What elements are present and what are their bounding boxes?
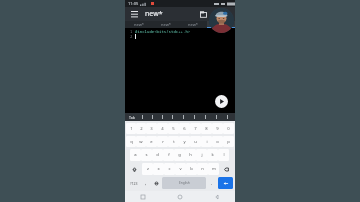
button[interactable]: 4 xyxy=(157,123,168,134)
button[interactable]: Run xyxy=(215,95,228,108)
button[interactable]: Symbol xyxy=(137,113,147,121)
staticText: 6 xyxy=(183,126,186,132)
staticText: a xyxy=(134,152,137,158)
staticText: 2 xyxy=(140,126,143,132)
staticText: o xyxy=(216,139,219,145)
staticText: 4 xyxy=(161,126,164,132)
button[interactable]: b xyxy=(186,163,197,175)
button[interactable]: x xyxy=(153,163,164,175)
button[interactable]: q xyxy=(126,136,136,147)
staticText: 9 xyxy=(216,126,219,132)
button[interactable]: 0 xyxy=(223,123,234,134)
staticText: x xyxy=(157,166,160,172)
button[interactable]: Back xyxy=(198,191,235,202)
button[interactable]: n xyxy=(197,163,208,175)
button[interactable]: new* xyxy=(125,21,152,28)
button[interactable]: Symbol xyxy=(222,113,233,121)
staticText: n xyxy=(201,166,204,172)
staticText: new* xyxy=(161,22,171,27)
button[interactable]: Open file xyxy=(198,9,209,20)
staticText: f xyxy=(168,152,170,158)
button[interactable]: w xyxy=(136,136,146,147)
button[interactable]: 9 xyxy=(212,123,223,134)
button[interactable]: h xyxy=(185,149,196,161)
staticText: q xyxy=(130,139,133,145)
button[interactable]: s xyxy=(141,149,152,161)
button[interactable]: y xyxy=(179,136,190,147)
staticText: new* xyxy=(216,22,226,27)
button[interactable]: v xyxy=(175,163,186,175)
button[interactable]: t xyxy=(168,136,179,147)
staticText: s xyxy=(145,152,148,158)
staticText: ?123 xyxy=(130,181,138,186)
staticText: g xyxy=(178,152,181,158)
button[interactable]: new* xyxy=(152,21,179,28)
staticText: 2 xyxy=(130,34,133,39)
staticText: 5 xyxy=(172,126,175,132)
staticText: p xyxy=(227,139,230,145)
button[interactable]: Symbol xyxy=(211,113,222,121)
staticText: k xyxy=(211,152,214,158)
button[interactable]: Tab xyxy=(127,113,137,121)
button[interactable]: d xyxy=(152,149,163,161)
staticText: m xyxy=(212,166,216,172)
button[interactable]: Backspace xyxy=(219,163,234,175)
button[interactable]: g xyxy=(174,149,185,161)
staticText: English xyxy=(179,181,190,185)
button[interactable]: Symbol xyxy=(189,113,200,121)
button[interactable]: . xyxy=(207,176,217,190)
button[interactable]: Symbol xyxy=(157,113,167,121)
button[interactable]: , xyxy=(141,176,151,190)
button[interactable]: k xyxy=(207,149,218,161)
button[interactable]: Shift xyxy=(126,163,142,175)
staticText: 3 xyxy=(150,126,153,132)
button[interactable]: j xyxy=(196,149,207,161)
button[interactable]: new* xyxy=(207,21,235,28)
button[interactable]: 2 xyxy=(136,123,146,134)
staticText: u xyxy=(194,139,197,145)
staticText: 8 xyxy=(205,126,208,132)
button[interactable]: z xyxy=(142,163,153,175)
button[interactable]: Symbol xyxy=(167,113,178,121)
staticText: w xyxy=(139,139,143,145)
staticText: t xyxy=(173,139,175,145)
button[interactable]: o xyxy=(212,136,223,147)
staticText: e xyxy=(150,139,153,145)
staticText: 11:05 xyxy=(128,1,139,6)
button[interactable]: Enter xyxy=(218,177,233,189)
staticText: c xyxy=(168,166,171,172)
button[interactable]: new* xyxy=(179,21,207,28)
button[interactable]: 5 xyxy=(168,123,179,134)
button[interactable]: English xyxy=(162,177,206,189)
staticText: y xyxy=(183,139,186,145)
button[interactable]: u xyxy=(190,136,201,147)
staticText: , xyxy=(145,180,147,187)
staticText: v xyxy=(179,166,182,172)
button[interactable]: e xyxy=(146,136,157,147)
button[interactable]: c xyxy=(164,163,175,175)
button[interactable]: i xyxy=(201,136,212,147)
staticText: i xyxy=(206,139,208,145)
button[interactable]: Symbol xyxy=(178,113,189,121)
button[interactable]: 7 xyxy=(190,123,201,134)
staticText: . xyxy=(211,180,213,187)
button[interactable]: 6 xyxy=(179,123,190,134)
button[interactable]: r xyxy=(157,136,168,147)
button[interactable]: 8 xyxy=(201,123,212,134)
button[interactable]: 1 xyxy=(126,123,136,134)
button[interactable]: Recents xyxy=(125,191,161,202)
button[interactable]: Menu xyxy=(129,9,139,19)
button[interactable]: Symbol xyxy=(200,113,211,121)
staticText: 0 xyxy=(227,126,230,132)
button[interactable]: Change language xyxy=(151,177,161,189)
button[interactable]: l xyxy=(218,149,229,161)
button[interactable]: ?123 xyxy=(127,177,140,189)
button[interactable]: a xyxy=(130,149,141,161)
button[interactable]: Home xyxy=(161,191,198,202)
button[interactable]: f xyxy=(163,149,174,161)
staticText: new* xyxy=(145,9,163,19)
button[interactable]: m xyxy=(208,163,219,175)
button[interactable]: 3 xyxy=(146,123,157,134)
button[interactable]: Symbol xyxy=(147,113,157,121)
button[interactable]: p xyxy=(223,136,234,147)
